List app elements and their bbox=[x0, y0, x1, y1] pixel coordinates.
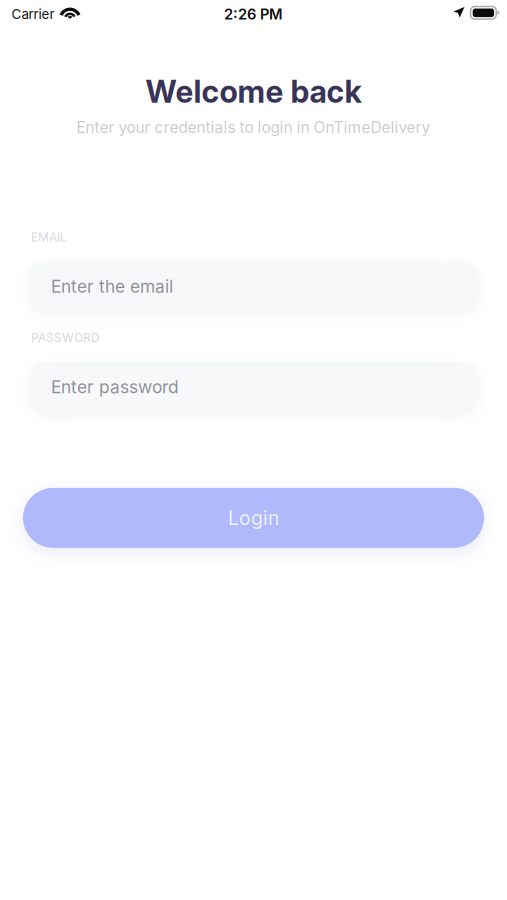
button[interactable]: Enter password bbox=[28, 362, 479, 412]
staticText: Enter password bbox=[51, 376, 179, 397]
button[interactable]: Login bbox=[23, 488, 484, 548]
staticText: Carrier bbox=[11, 6, 54, 22]
staticText: Login bbox=[228, 506, 279, 530]
staticText: PASSWORD bbox=[31, 330, 100, 345]
staticText: Enter the email bbox=[51, 276, 173, 297]
staticText: 2:26 PM bbox=[224, 5, 283, 23]
staticText: EMAIL bbox=[31, 230, 67, 244]
button[interactable]: Enter the email bbox=[28, 261, 479, 311]
staticText: Enter your credentials to login in OnTim… bbox=[76, 118, 430, 137]
staticText: Welcome back bbox=[145, 73, 361, 110]
